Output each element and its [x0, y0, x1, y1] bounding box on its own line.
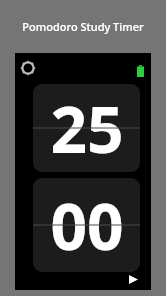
button[interactable]: Battery status [137, 65, 144, 77]
button[interactable]: 25 [33, 84, 140, 172]
button[interactable]: Start timer [124, 270, 142, 288]
staticText: 25 [50, 85, 124, 172]
staticText: 00 [50, 182, 124, 269]
staticText: Pomodoro Study Timer [22, 19, 144, 34]
button[interactable]: Settings [21, 61, 35, 75]
button[interactable]: 00 [33, 178, 140, 272]
